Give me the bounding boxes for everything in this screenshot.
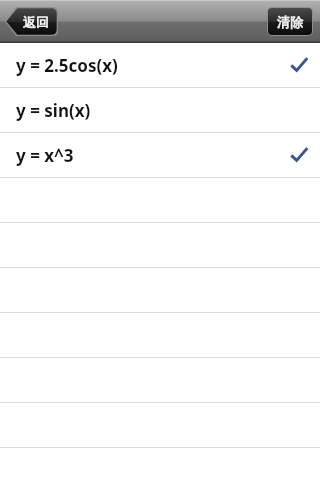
button[interactable]: 返回 xyxy=(5,7,58,36)
button[interactable]: y = x^3 xyxy=(0,133,320,177)
staticText: 清除 xyxy=(277,14,303,30)
button[interactable]: y = 2.5cos(x) xyxy=(0,43,320,87)
staticText: 返回 xyxy=(23,14,49,30)
staticText: y = x^3 xyxy=(16,144,74,167)
button[interactable]: y = sin(x) xyxy=(0,88,320,132)
staticText: y = 2.5cos(x) xyxy=(16,54,118,77)
other: Selected xyxy=(290,146,308,164)
button[interactable]: 清除 xyxy=(268,8,312,35)
other: Selected xyxy=(290,56,308,74)
staticText: y = sin(x) xyxy=(16,99,91,122)
